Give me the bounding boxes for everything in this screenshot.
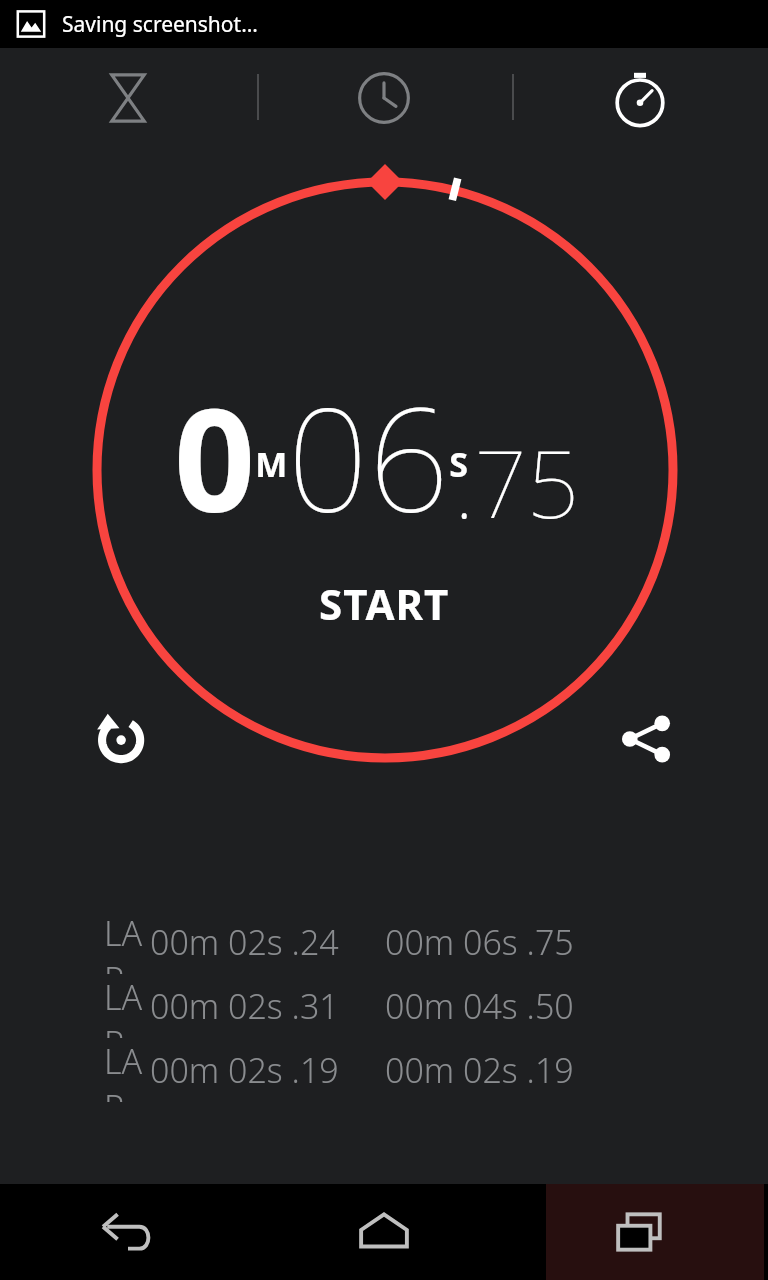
staticText: 00m 02s .24: [150, 919, 339, 965]
staticText: LAP 2: [104, 974, 150, 1038]
staticText: 00m 02s .19: [150, 1047, 339, 1093]
staticText: START: [319, 575, 450, 632]
button[interactable]: Clock: [256, 48, 512, 148]
staticText: 00m 02s .31: [150, 983, 339, 1029]
staticText: 0M06S: [174, 360, 468, 553]
staticText: .75: [454, 420, 580, 545]
staticText: 00m 06s .75: [385, 919, 574, 965]
button[interactable]: LAP 3: [0, 910, 768, 974]
staticText: 00m 02s .19: [385, 1047, 574, 1093]
staticText: LAP 3: [104, 910, 150, 974]
button[interactable]: Reset: [84, 703, 156, 775]
button[interactable]: Timer: [0, 48, 256, 148]
button[interactable]: LAP 2: [0, 974, 768, 1038]
button[interactable]: Share: [610, 703, 682, 775]
button[interactable]: Recents: [512, 1184, 768, 1280]
button[interactable]: Stopwatch: [512, 48, 768, 148]
button[interactable]: Back: [0, 1184, 256, 1280]
staticText: 00m 04s .50: [385, 983, 574, 1029]
button[interactable]: Home: [256, 1184, 512, 1280]
button[interactable]: LAP 1: [0, 1038, 768, 1102]
staticText: LAP 1: [104, 1038, 150, 1102]
staticText: Saving screenshot…: [62, 10, 258, 39]
button[interactable]: START: [319, 575, 450, 632]
